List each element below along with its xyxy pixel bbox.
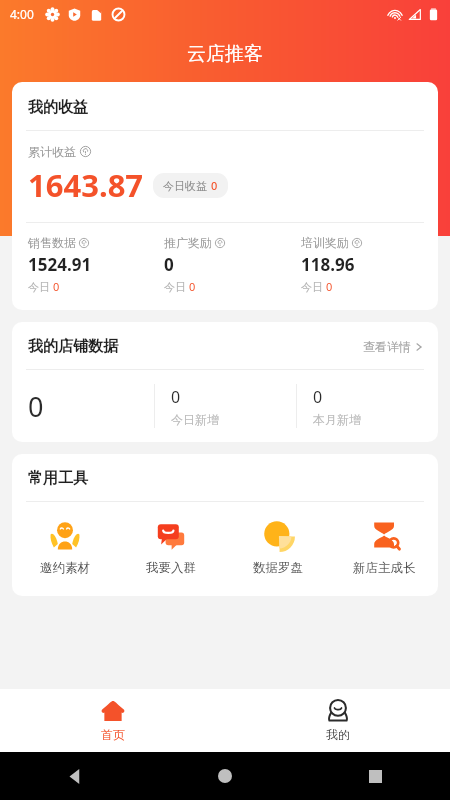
staticText: 0: [211, 178, 218, 193]
staticText: 邀约素材: [40, 560, 90, 576]
staticText: 培训奖励: [301, 235, 349, 250]
staticText: 今日收益: [163, 179, 207, 193]
button[interactable]: 我的收益: [12, 82, 438, 310]
staticText: 0: [28, 388, 44, 425]
staticText: 数据罗盘: [253, 560, 303, 576]
staticText: 今日: [28, 280, 50, 294]
staticText: 0: [53, 279, 60, 294]
staticText: 销售数据: [28, 235, 76, 250]
button[interactable]: 0: [297, 370, 438, 442]
staticText: 我的收益: [28, 98, 88, 117]
button[interactable]: Recent apps: [300, 752, 450, 800]
staticText: 我的店铺数据: [28, 337, 118, 356]
button[interactable]: 推广奖励: [164, 235, 301, 294]
staticText: 0: [171, 386, 181, 408]
staticText: 1524.91: [28, 253, 92, 276]
button[interactable]: 销售数据: [28, 235, 164, 294]
staticText: 新店主成长: [353, 560, 416, 576]
button[interactable]: 邀约素材: [12, 520, 118, 576]
staticText: 0: [313, 386, 323, 408]
staticText: 0: [189, 279, 196, 294]
staticText: 118.96: [301, 253, 355, 276]
button[interactable]: 0: [12, 370, 154, 442]
button[interactable]: 今日收益: [153, 173, 228, 198]
button[interactable]: 我要入群: [118, 520, 224, 576]
staticText: 今日新增: [171, 412, 219, 427]
staticText: 0: [326, 279, 333, 294]
staticText: 首页: [101, 727, 125, 742]
button[interactable]: 新店主成长: [331, 520, 438, 576]
button[interactable]: 查看详情: [363, 339, 424, 354]
staticText: 我的: [326, 727, 350, 742]
staticText: 云店推客: [0, 42, 450, 66]
staticText: 今日: [164, 280, 186, 294]
staticText: 0: [164, 253, 174, 276]
staticText: 累计收益: [28, 144, 76, 159]
button[interactable]: 0: [155, 370, 296, 442]
button[interactable]: Home: [150, 752, 300, 800]
staticText: 常用工具: [28, 469, 88, 488]
button[interactable]: 培训奖励: [301, 235, 438, 294]
staticText: 今日: [301, 280, 323, 294]
staticText: 4:00: [10, 6, 34, 22]
button[interactable]: 我的店铺数据: [12, 322, 438, 442]
button[interactable]: 我的: [225, 689, 450, 752]
button[interactable]: 数据罗盘: [224, 520, 331, 576]
staticText: 推广奖励: [164, 235, 212, 250]
staticText: 我要入群: [146, 560, 196, 576]
button[interactable]: Back: [0, 752, 150, 800]
staticText: 1643.87: [28, 164, 144, 206]
button[interactable]: 首页: [0, 689, 225, 752]
staticText: 查看详情: [363, 339, 411, 354]
staticText: 本月新增: [313, 412, 361, 427]
